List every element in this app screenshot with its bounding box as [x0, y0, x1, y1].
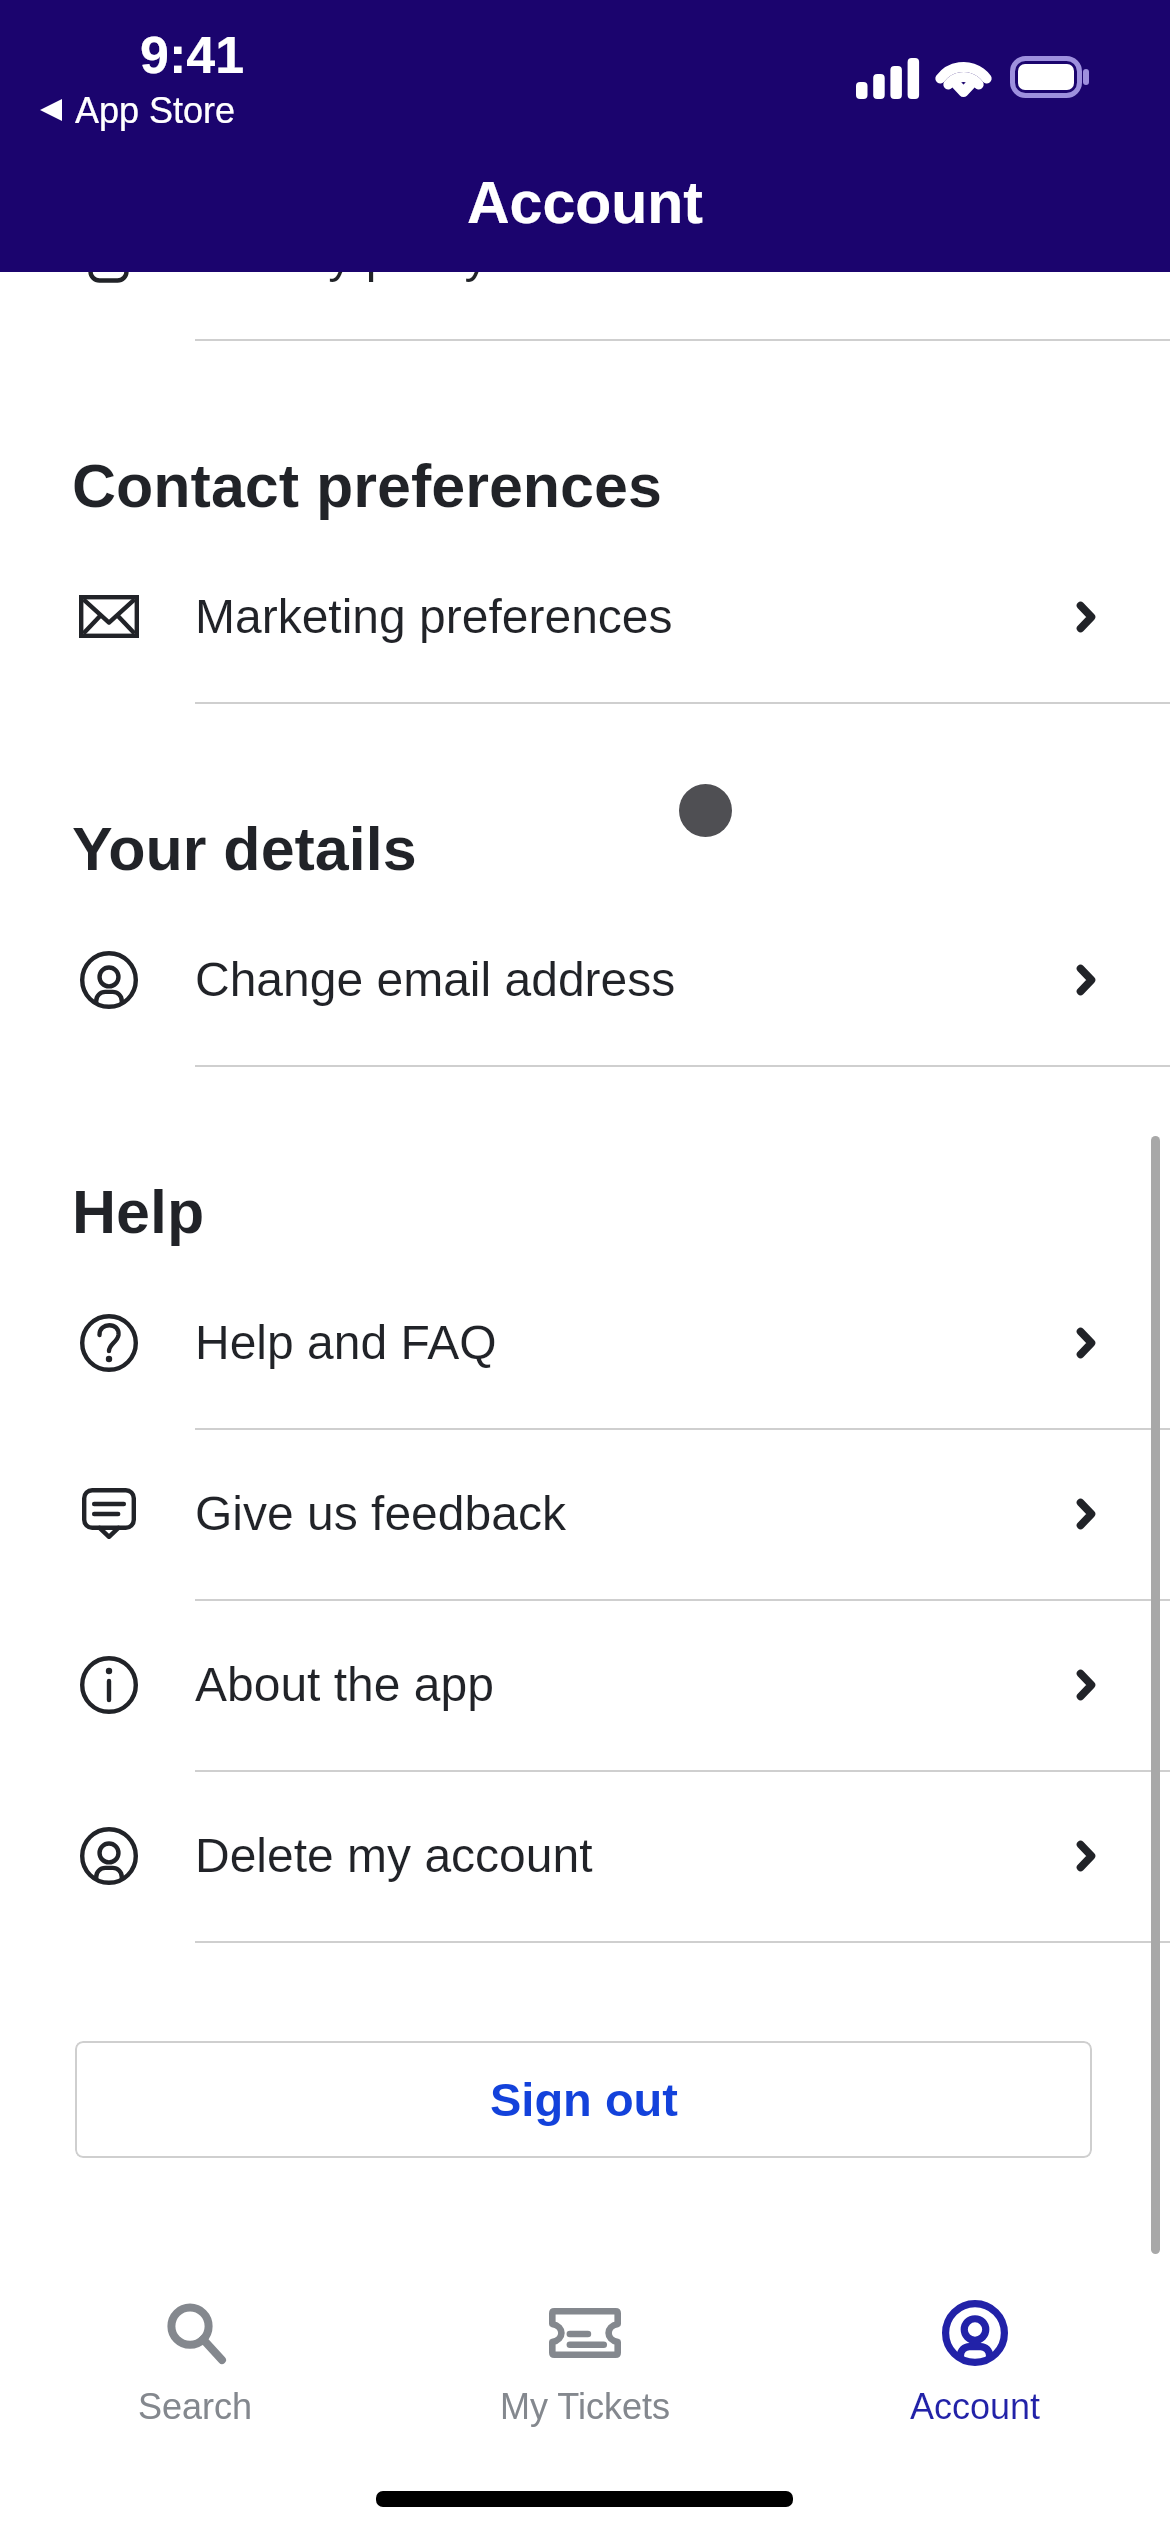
button[interactable]: Search [0, 2268, 390, 2426]
staticText: Account [910, 2386, 1041, 2426]
button[interactable]: Privacy policy [0, 170, 1170, 341]
staticText: Marketing preferences [195, 590, 673, 644]
staticText: Sign out [490, 2073, 678, 2126]
staticText: 9:41 [140, 26, 245, 84]
staticText: About the app [195, 1658, 494, 1712]
button[interactable]: Marketing preferences [0, 531, 1170, 702]
button[interactable]: Sign out [75, 2041, 1092, 2158]
button[interactable]: Account [780, 2268, 1170, 2426]
button[interactable]: About the app [0, 1599, 1170, 1770]
button[interactable]: My Tickets [390, 2268, 780, 2426]
staticText: Search [138, 2386, 253, 2426]
button[interactable]: Change email address [0, 894, 1170, 1065]
staticText: Change email address [195, 953, 676, 1007]
staticText: Contact preferences [72, 452, 662, 520]
button[interactable]: Give us feedback [0, 1428, 1170, 1599]
staticText: Help [72, 1178, 205, 1246]
staticText: Delete my account [195, 1829, 593, 1883]
staticText: Account [0, 170, 1170, 236]
button[interactable]: Delete my account [0, 1770, 1170, 1941]
staticText: Your details [72, 815, 417, 883]
staticText: My Tickets [500, 2386, 671, 2426]
button[interactable]: Help and FAQ [0, 1257, 1170, 1428]
staticText: Give us feedback [195, 1487, 566, 1541]
staticText: Privacy policy [195, 229, 489, 283]
staticText: App Store [75, 90, 236, 130]
staticText: Help and FAQ [195, 1316, 497, 1370]
button[interactable]: Back to App Store [38, 90, 236, 130]
